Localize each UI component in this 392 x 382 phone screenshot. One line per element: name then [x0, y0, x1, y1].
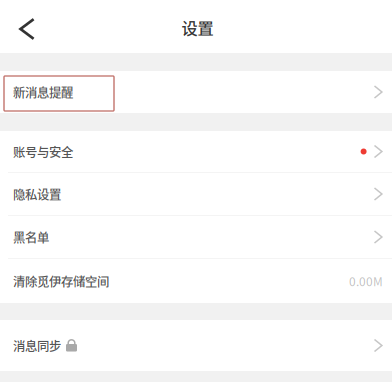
- staticText: 0.00M: [349, 272, 383, 290]
- button[interactable]: 账号与安全: [0, 131, 392, 173]
- button[interactable]: 新消息提醒: [0, 71, 392, 113]
- staticText: 消息同步: [13, 336, 61, 354]
- staticText: 设置: [181, 16, 213, 39]
- staticText: 账号与安全: [13, 142, 73, 160]
- button[interactable]: 隐私设置: [0, 173, 392, 216]
- button[interactable]: 消息同步: [0, 320, 392, 371]
- staticText: 新消息提醒: [13, 83, 73, 101]
- staticText: 黑名单: [13, 228, 49, 246]
- staticText: 隐私设置: [13, 185, 61, 203]
- button[interactable]: 黑名单: [0, 216, 392, 259]
- button[interactable]: Back: [7, 8, 47, 50]
- button[interactable]: 清除觅伊存储空间: [0, 259, 392, 303]
- staticText: 清除觅伊存储空间: [13, 272, 109, 290]
